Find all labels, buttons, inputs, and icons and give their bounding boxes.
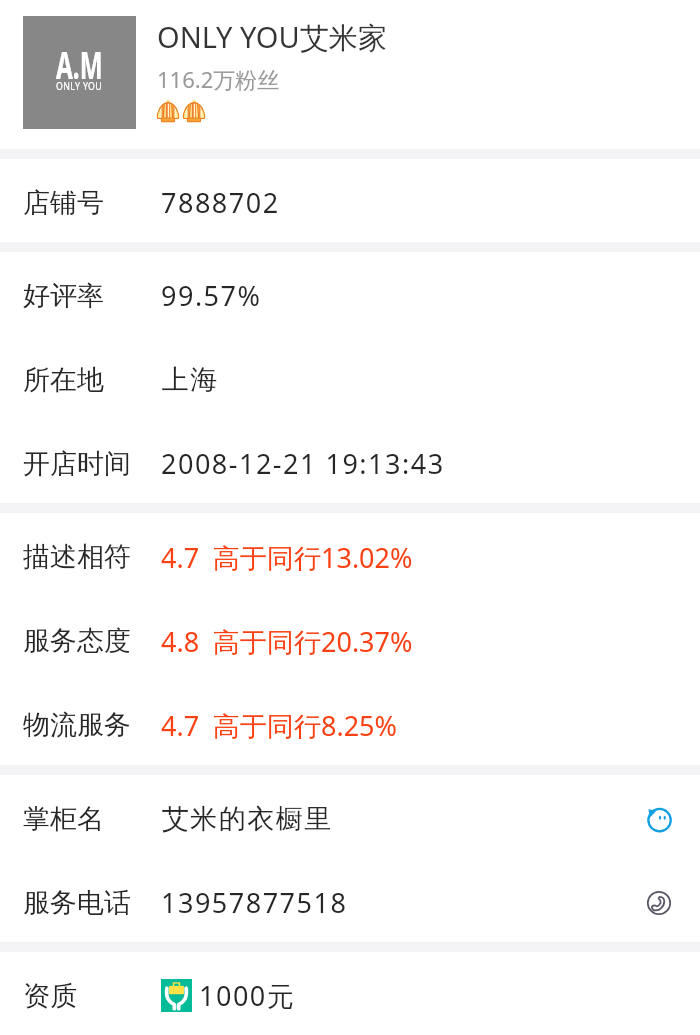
staticText: 99.57% <box>161 277 262 314</box>
staticText: 掌柜名 <box>23 802 104 836</box>
button[interactable]: Chat with seller <box>645 805 673 833</box>
button[interactable]: 描述相符 <box>0 513 700 597</box>
staticText: 资质 <box>23 979 77 1013</box>
button[interactable]: Call seller <box>645 889 673 917</box>
button[interactable]: 店铺号 <box>0 159 700 242</box>
staticText: 服务态度 <box>23 624 131 658</box>
staticText: ONLY YOU艾米家 <box>157 17 387 57</box>
button[interactable]: 物流服务 <box>0 681 700 765</box>
staticText: 116.2万粉丝 <box>157 64 280 94</box>
staticText: 高于同行20.37% <box>213 623 413 660</box>
staticText: 物流服务 <box>23 708 131 742</box>
button[interactable]: 掌柜名 <box>0 775 700 859</box>
staticText: 艾米的衣橱里 <box>161 802 332 836</box>
staticText: 店铺号 <box>23 186 104 220</box>
staticText: 4.7 <box>161 539 200 576</box>
staticText: 1000元 <box>199 977 296 1014</box>
staticText: 2008-12-21 19:13:43 <box>161 445 445 482</box>
staticText: 高于同行13.02% <box>213 539 413 576</box>
staticText: 13957877518 <box>161 884 348 921</box>
staticText: 高于同行8.25% <box>213 707 398 744</box>
button[interactable]: 服务电话 <box>0 859 700 942</box>
staticText: 所在地 <box>23 363 104 397</box>
staticText: 服务电话 <box>23 886 131 920</box>
button[interactable]: 服务态度 <box>0 597 700 681</box>
staticText: 描述相符 <box>23 540 131 574</box>
button[interactable]: 开店时间 <box>0 420 700 503</box>
staticText: 上海 <box>161 363 218 397</box>
staticText: 7888702 <box>161 184 280 221</box>
staticText: 4.7 <box>161 707 200 744</box>
button[interactable]: 所在地 <box>0 335 700 420</box>
staticText: A.M <box>56 38 103 90</box>
staticText: 4.8 <box>161 623 200 660</box>
staticText: 好评率 <box>23 279 104 313</box>
button[interactable]: 好评率 <box>0 252 700 335</box>
button[interactable]: 资质 <box>0 952 700 1035</box>
staticText: 开店时间 <box>23 447 131 481</box>
staticText: ONLY YOU <box>56 79 103 93</box>
